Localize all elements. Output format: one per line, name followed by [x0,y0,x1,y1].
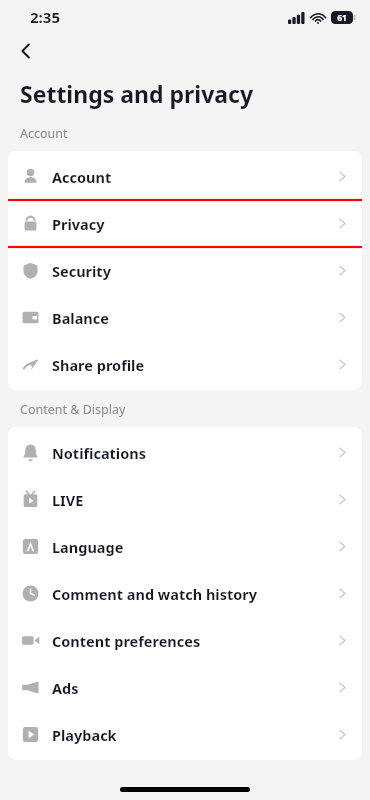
button[interactable]: Language [8,523,362,570]
staticText: Balance [52,308,337,328]
staticText: Content & Display [20,401,126,418]
staticText: 2:35 [30,7,60,27]
staticText: Language [52,537,337,557]
button[interactable]: Back [8,34,44,68]
button[interactable]: Share profile [8,341,362,388]
staticText: Share profile [52,355,337,375]
button[interactable]: Balance [8,294,362,341]
staticText: 61 [337,12,347,24]
button[interactable]: Account [8,153,362,200]
staticText: Playback [52,725,337,745]
button[interactable]: Privacy [8,200,362,247]
button[interactable]: Ads [8,664,362,711]
staticText: Account [20,125,68,142]
staticText: Notifications [52,443,337,463]
staticText: Security [52,261,337,281]
button[interactable]: Notifications [8,429,362,476]
staticText: Privacy [52,214,337,234]
button[interactable]: Playback [8,711,362,758]
button[interactable]: Security [8,247,362,294]
staticText: Ads [52,678,337,698]
button[interactable]: Comment and watch history [8,570,362,617]
button[interactable]: Content preferences [8,617,362,664]
staticText: Comment and watch history [52,584,337,604]
staticText: Content preferences [52,631,337,651]
staticText: Account [52,167,337,187]
staticText: LIVE [52,490,337,510]
button[interactable]: LIVE [8,476,362,523]
staticText: Settings and privacy [20,78,254,109]
